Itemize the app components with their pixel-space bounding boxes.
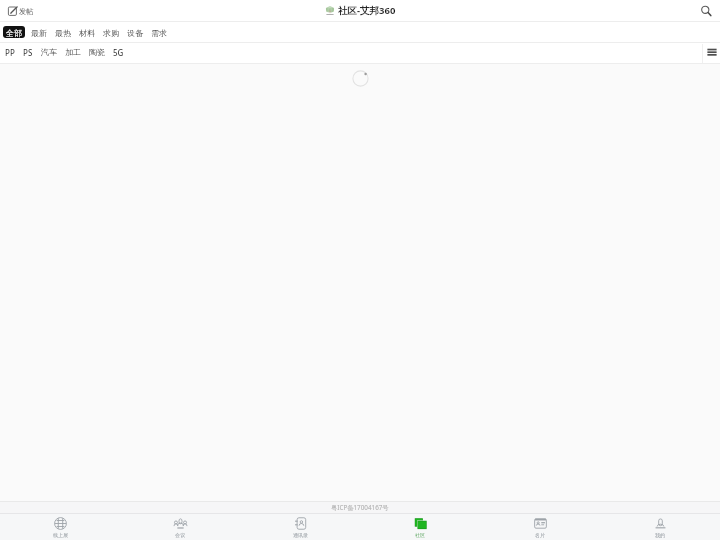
staticText: 最热 xyxy=(55,28,71,38)
staticText: 我的 xyxy=(655,532,665,538)
staticText: PP xyxy=(5,47,15,58)
button[interactable]: 汽车 xyxy=(37,43,61,63)
button[interactable]: 陶瓷 xyxy=(85,43,109,63)
button[interactable]: 需求 xyxy=(147,22,171,42)
staticText: 最新 xyxy=(31,28,47,38)
staticText: 粤ICP备17004167号 xyxy=(331,503,389,512)
button[interactable]: 发帖 xyxy=(0,3,42,19)
staticText: 材料 xyxy=(79,28,95,38)
button[interactable]: 线上展 xyxy=(0,514,120,540)
staticText: 5G xyxy=(113,47,124,58)
staticText: 求购 xyxy=(103,28,119,38)
button[interactable]: PP xyxy=(1,43,19,63)
button[interactable]: 材料 xyxy=(75,22,99,42)
button[interactable]: 设备 xyxy=(123,22,147,42)
button[interactable]: 我的 xyxy=(600,514,720,540)
button[interactable]: 加工 xyxy=(61,43,85,63)
button[interactable]: 全部 xyxy=(3,26,25,38)
button[interactable]: 会议 xyxy=(120,514,240,540)
staticText: 通讯录 xyxy=(293,532,308,538)
button[interactable]: Search xyxy=(699,4,713,18)
staticText: 加工 xyxy=(65,47,81,57)
staticText: 全部 xyxy=(6,28,22,38)
staticText: 线上展 xyxy=(53,532,68,538)
button[interactable]: 求购 xyxy=(99,22,123,42)
staticText: 名片 xyxy=(535,532,545,538)
button[interactable]: 通讯录 xyxy=(240,514,360,540)
staticText: PS xyxy=(23,47,33,58)
staticText: 社区-艾邦360 xyxy=(338,4,396,17)
button[interactable]: 最新 xyxy=(27,22,51,42)
button[interactable]: Menu xyxy=(703,43,720,63)
staticText: 会议 xyxy=(175,532,185,538)
button[interactable]: 5G xyxy=(109,43,128,63)
staticText: 设备 xyxy=(127,28,143,38)
staticText: 社区 xyxy=(415,532,425,538)
staticText: 陶瓷 xyxy=(89,47,105,57)
button[interactable]: 名片 xyxy=(480,514,600,540)
button[interactable]: 社区 xyxy=(360,514,480,540)
button[interactable]: PS xyxy=(19,43,37,63)
button[interactable]: 最热 xyxy=(51,22,75,42)
staticText: 需求 xyxy=(151,28,167,38)
staticText: 汽车 xyxy=(41,47,57,57)
staticText: 发帖 xyxy=(19,7,34,16)
